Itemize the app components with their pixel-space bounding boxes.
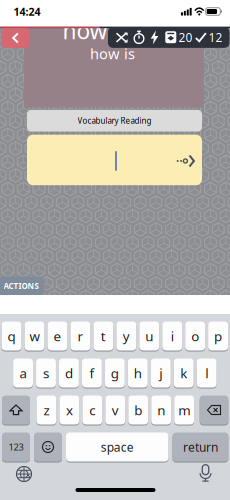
button[interactable]: s	[36, 358, 56, 388]
button[interactable]: t	[93, 321, 113, 351]
staticText: z	[43, 401, 49, 419]
staticText: h	[134, 364, 142, 382]
button[interactable]: i	[162, 321, 182, 351]
staticText: l	[205, 364, 208, 382]
button[interactable]: return	[172, 432, 228, 462]
button[interactable]: c	[82, 395, 102, 425]
staticText: e	[53, 327, 61, 345]
staticText: g	[111, 364, 119, 382]
button[interactable]: h	[128, 358, 148, 388]
staticText: how	[62, 15, 107, 45]
button[interactable]: m	[174, 395, 194, 425]
button[interactable]: j	[151, 358, 171, 388]
button[interactable]: f	[82, 358, 102, 388]
staticText: s	[43, 364, 49, 382]
staticText: m	[178, 401, 190, 419]
button[interactable]: g	[105, 358, 125, 388]
button[interactable]: Next keyboard	[16, 466, 31, 481]
staticText: ACTIONS	[3, 281, 38, 291]
staticText: o	[191, 327, 199, 345]
button[interactable]: Shift	[2, 395, 30, 425]
button[interactable]: Timer	[132, 30, 146, 44]
staticText: q	[7, 327, 15, 345]
button[interactable]: Back	[1, 28, 29, 48]
button[interactable]: Answer field	[27, 135, 202, 185]
button[interactable]: q	[2, 321, 21, 351]
button[interactable]: d	[59, 358, 79, 388]
button[interactable]: w	[25, 321, 44, 351]
button[interactable]: l	[197, 358, 217, 388]
button[interactable]: Delete	[200, 395, 228, 425]
button[interactable]: n	[151, 395, 171, 425]
staticText: w	[29, 327, 39, 345]
button[interactable]: 123	[2, 432, 30, 462]
button[interactable]: Actions	[0, 276, 44, 295]
staticText: k	[180, 364, 187, 382]
button[interactable]: z	[36, 395, 56, 425]
staticText: v	[112, 401, 119, 419]
staticText: return	[183, 439, 218, 455]
staticText: x	[66, 401, 73, 419]
staticText: y	[123, 327, 130, 345]
button[interactable]: k	[174, 358, 194, 388]
staticText: i	[171, 327, 174, 345]
staticText: how is	[90, 44, 135, 63]
staticText: 123	[8, 441, 23, 453]
staticText: 12	[208, 29, 222, 45]
staticText: c	[89, 401, 95, 419]
staticText: p	[214, 327, 222, 345]
staticText: 14:24	[13, 4, 40, 19]
button[interactable]: o	[185, 321, 205, 351]
button[interactable]: e	[47, 321, 67, 351]
button[interactable]: v	[105, 395, 125, 425]
button[interactable]: y	[116, 321, 136, 351]
staticText: t	[101, 327, 106, 345]
staticText: space	[101, 439, 134, 455]
button[interactable]: Emoji	[34, 432, 62, 462]
button[interactable]: Shuffle	[115, 30, 129, 44]
button[interactable]: x	[59, 395, 79, 425]
staticText: a	[19, 364, 26, 382]
staticText: r	[77, 327, 83, 345]
button[interactable]: Dictate	[198, 464, 213, 481]
staticText: f	[89, 364, 94, 382]
staticText: Vocabulary Reading	[77, 115, 151, 126]
button[interactable]: a	[13, 358, 33, 388]
button[interactable]: b	[128, 395, 148, 425]
staticText: d	[65, 364, 73, 382]
button[interactable]: Auto advance	[149, 30, 159, 44]
button[interactable]: space	[66, 432, 168, 462]
staticText: 20	[178, 29, 192, 45]
button[interactable]: r	[70, 321, 90, 351]
staticText: j	[159, 364, 162, 382]
staticText: u	[145, 327, 153, 345]
staticText: b	[134, 401, 142, 419]
staticText: n	[157, 401, 165, 419]
button[interactable]: p	[208, 321, 228, 351]
button[interactable]: u	[139, 321, 159, 351]
